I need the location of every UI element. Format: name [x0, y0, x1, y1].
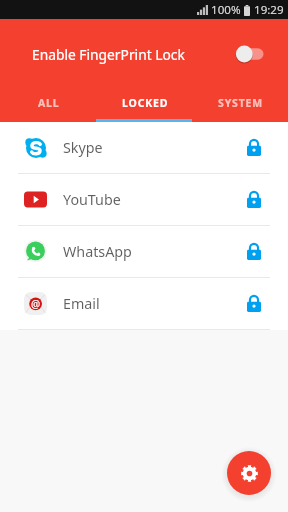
button[interactable]: Skype — [0, 122, 288, 173]
staticText: Skype — [63, 138, 103, 157]
staticText: SYSTEM — [218, 96, 264, 110]
button[interactable]: @ — [0, 278, 288, 329]
button[interactable]: LOCKED — [96, 89, 192, 116]
staticText: ALL — [38, 96, 60, 110]
staticText: Email — [63, 294, 100, 313]
staticText: @ — [31, 297, 41, 311]
staticText: 19:29 — [254, 2, 284, 18]
button[interactable]: SYSTEM — [192, 89, 288, 116]
staticText: WhatsApp — [63, 242, 132, 261]
staticText: YouTube — [63, 190, 121, 209]
button[interactable]: WhatsApp — [0, 226, 288, 277]
staticText: Enable FingerPrint Lock — [32, 45, 185, 64]
staticText: LOCKED — [122, 96, 169, 110]
button[interactable]: YouTube — [0, 174, 288, 225]
button[interactable]: Settings — [227, 451, 271, 495]
button[interactable]: ALL — [0, 89, 96, 116]
staticText: 100% — [211, 2, 241, 18]
button[interactable]: Enable FingerPrint Lock toggle — [236, 43, 266, 65]
